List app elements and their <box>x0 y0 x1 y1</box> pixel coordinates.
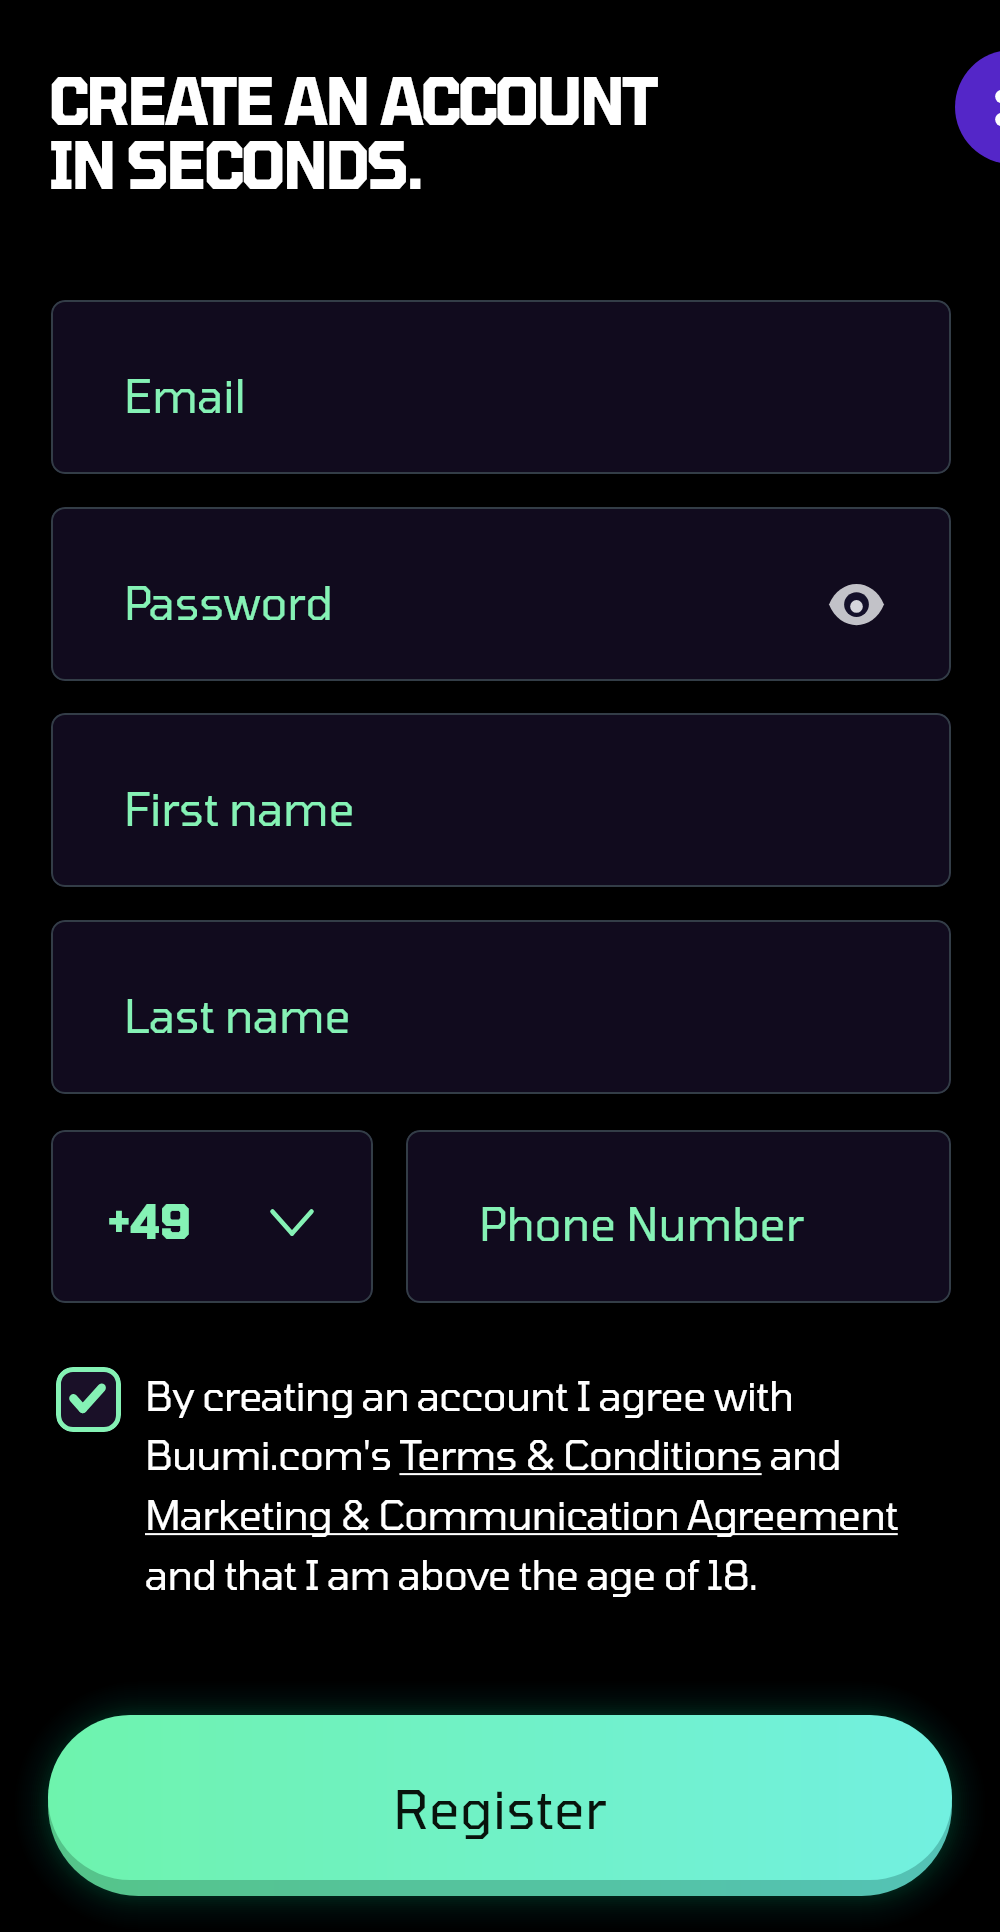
staticText: First name <box>124 781 355 835</box>
button[interactable]: Support chat <box>955 50 1000 164</box>
button[interactable]: Password <box>51 507 951 681</box>
staticText: CREATE AN ACCOUNT IN SECONDS. <box>49 60 656 202</box>
button[interactable]: Last name <box>51 920 951 1094</box>
staticText: Register <box>393 1775 607 1839</box>
staticText: Phone Number <box>479 1196 804 1250</box>
staticText: By creating an account I agree with Buum… <box>145 1370 945 1598</box>
button[interactable]: Show password <box>801 549 911 659</box>
button[interactable]: I agree to the terms <box>56 1367 121 1432</box>
button[interactable]: First name <box>51 713 951 887</box>
staticText: Last name <box>124 988 351 1042</box>
staticText: Password <box>124 575 333 629</box>
staticText: Email <box>124 368 246 422</box>
button[interactable]: Phone Number <box>406 1130 951 1303</box>
button[interactable]: Country calling code +49 <box>51 1130 373 1303</box>
button[interactable]: Register <box>48 1715 952 1880</box>
staticText: +49 <box>107 1191 190 1249</box>
button[interactable]: Email <box>51 300 951 474</box>
